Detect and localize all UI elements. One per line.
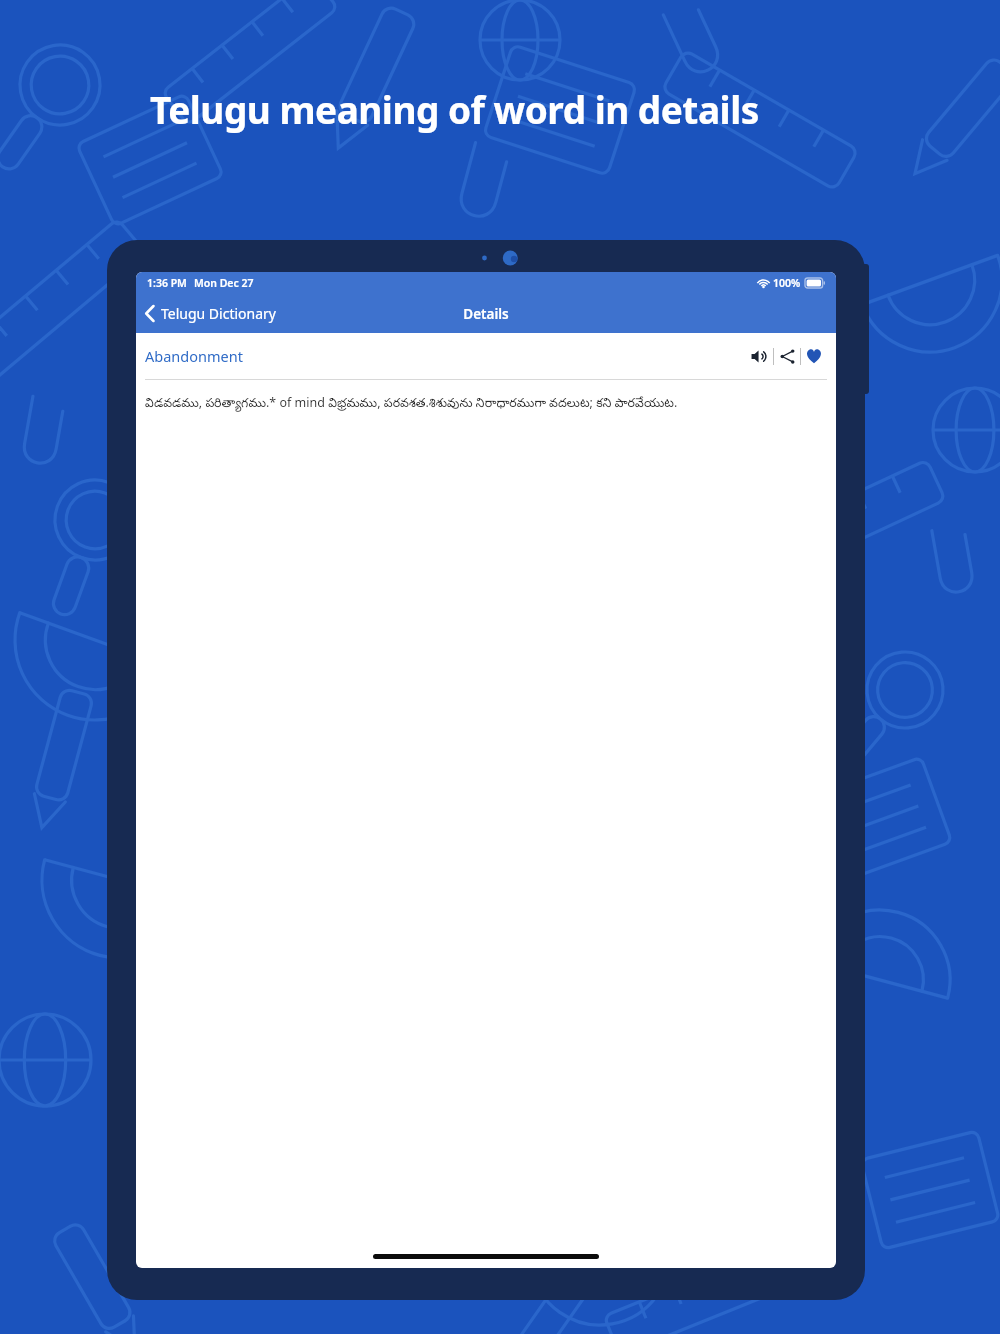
staticText: Telugu Dictionary xyxy=(161,304,276,323)
staticText: Telugu meaning of word in details xyxy=(150,84,759,134)
staticText: 100% xyxy=(773,276,801,290)
staticText: విడవడము, పరిత్యాగము.* of mind విభ్రమము, … xyxy=(145,394,678,413)
button[interactable]: Play pronunciation xyxy=(747,343,773,369)
button[interactable]: Abandonment xyxy=(145,346,243,366)
staticText: Mon Dec 27 xyxy=(194,276,254,290)
staticText: 1:36 PM xyxy=(147,276,187,290)
button[interactable]: Favorite xyxy=(801,343,827,369)
button[interactable]: Telugu Dictionary xyxy=(136,300,284,327)
button[interactable]: Share xyxy=(774,343,800,369)
staticText: Details xyxy=(463,305,509,323)
